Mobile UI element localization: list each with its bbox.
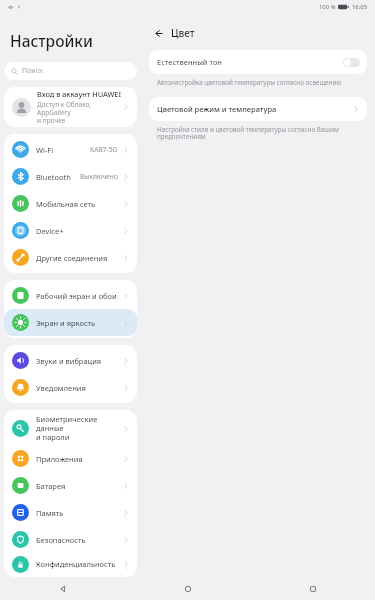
button[interactable]: Bluetooth xyxy=(4,163,137,190)
button[interactable]: Цветовой режим и температура xyxy=(149,97,367,121)
button[interactable]: Память xyxy=(4,499,137,526)
button[interactable]: Безопасность xyxy=(4,526,137,553)
staticText: Настройки xyxy=(10,30,93,51)
staticText: Батарея xyxy=(36,481,121,491)
staticText: Уведомления xyxy=(36,383,121,393)
button[interactable]: Обзор xyxy=(303,579,323,599)
staticText: Цветовой режим и температура xyxy=(157,104,351,114)
button[interactable]: Device+ xyxy=(4,217,137,244)
button[interactable]: Звуки и вибрация xyxy=(4,347,137,374)
button[interactable]: Другие соединения xyxy=(4,244,137,271)
button[interactable]: Поиск xyxy=(4,62,137,80)
staticText: Память xyxy=(36,508,121,518)
staticText: Автонастройка цветовой температуры согла… xyxy=(157,78,342,87)
staticText: Мобильная сеть xyxy=(36,199,121,209)
button[interactable]: Естественный тон xyxy=(343,58,360,67)
staticText: Звуки и вибрация xyxy=(36,356,121,366)
button[interactable]: Рабочий экран и обои xyxy=(4,282,137,309)
staticText: Конфиденциальность xyxy=(36,559,121,569)
button[interactable]: Батарея xyxy=(4,472,137,499)
button[interactable]: Конфиденциальность xyxy=(4,553,137,575)
staticText: Доступ к Облако, AppGallery и прочее xyxy=(37,100,121,125)
staticText: Безопасность xyxy=(36,535,121,545)
staticText: Поиск xyxy=(22,66,43,76)
staticText: Bluetooth xyxy=(36,172,80,182)
button[interactable]: Экран и яркость xyxy=(4,309,137,336)
button[interactable]: Биометрические данные и пароли xyxy=(4,412,137,445)
staticText: 100 % xyxy=(319,3,336,11)
staticText: Рабочий экран и обои xyxy=(36,291,121,301)
staticText: Вход в аккаунт HUAWEI xyxy=(37,89,121,99)
staticText: KAB7-5G xyxy=(90,145,118,154)
button[interactable]: Wi-Fi xyxy=(4,136,137,163)
button[interactable]: Главный экран xyxy=(178,579,198,599)
staticText: Биометрические данные и пароли xyxy=(36,414,121,443)
button[interactable]: Вход в аккаунт HUAWEI xyxy=(4,87,137,127)
staticText: Экран и яркость xyxy=(36,318,121,328)
staticText: Цвет xyxy=(171,26,195,40)
staticText: Wi-Fi xyxy=(36,145,90,155)
button[interactable]: Назад xyxy=(53,579,73,599)
staticText: 16:05 xyxy=(352,3,368,11)
staticText: Естественный тон xyxy=(157,57,343,67)
button[interactable]: Естественный тон xyxy=(149,50,367,74)
staticText: Приложения xyxy=(36,454,121,464)
button[interactable]: Назад xyxy=(149,24,167,42)
button[interactable]: Приложения xyxy=(4,445,137,472)
button[interactable]: Мобильная сеть xyxy=(4,190,137,217)
staticText: Device+ xyxy=(36,226,121,236)
staticText: Настройка стиля и цветовой температуры с… xyxy=(157,125,339,141)
staticText: Другие соединения xyxy=(36,253,121,263)
staticText: Выключено xyxy=(80,172,118,181)
button[interactable]: Уведомления xyxy=(4,374,137,401)
